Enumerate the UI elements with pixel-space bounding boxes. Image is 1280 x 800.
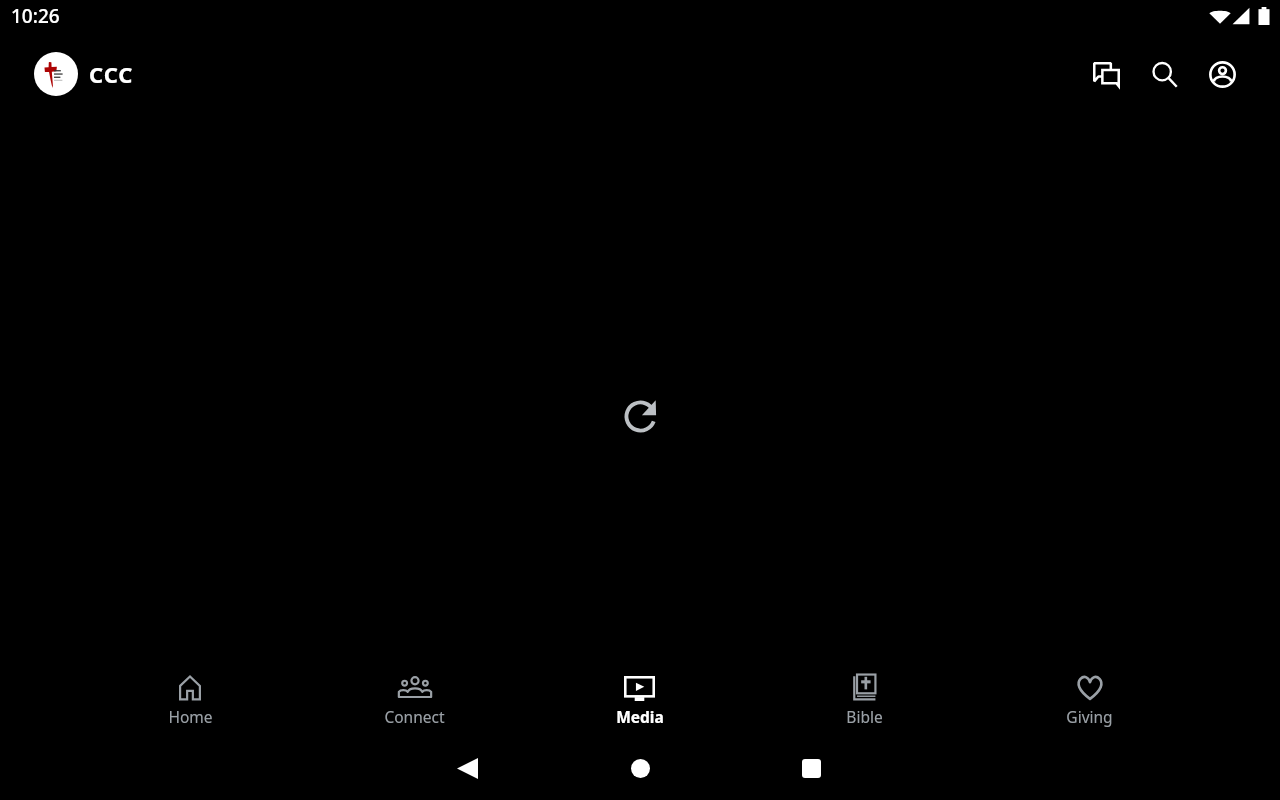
staticText: 10:26: [11, 3, 60, 29]
button[interactable]: Recent apps: [791, 748, 831, 788]
staticText: Home: [168, 706, 213, 727]
button[interactable]: Refresh: [616, 392, 665, 441]
button[interactable]: Search: [1140, 50, 1189, 99]
staticText: Media: [616, 706, 664, 727]
button[interactable]: CCC: [34, 52, 134, 96]
button[interactable]: Connect: [302, 671, 527, 727]
button[interactable]: Home: [620, 748, 660, 788]
staticText: Giving: [1066, 706, 1113, 727]
button[interactable]: Giving: [977, 671, 1202, 727]
staticText: CCC: [89, 59, 134, 89]
button[interactable]: Back: [447, 748, 487, 788]
button[interactable]: Account: [1198, 50, 1247, 99]
staticText: Connect: [384, 706, 445, 727]
staticText: Bible: [846, 706, 883, 727]
button[interactable]: Home: [78, 671, 302, 727]
button[interactable]: Media: [527, 671, 752, 727]
button[interactable]: Messages: [1082, 50, 1131, 99]
button[interactable]: Bible: [752, 671, 977, 727]
